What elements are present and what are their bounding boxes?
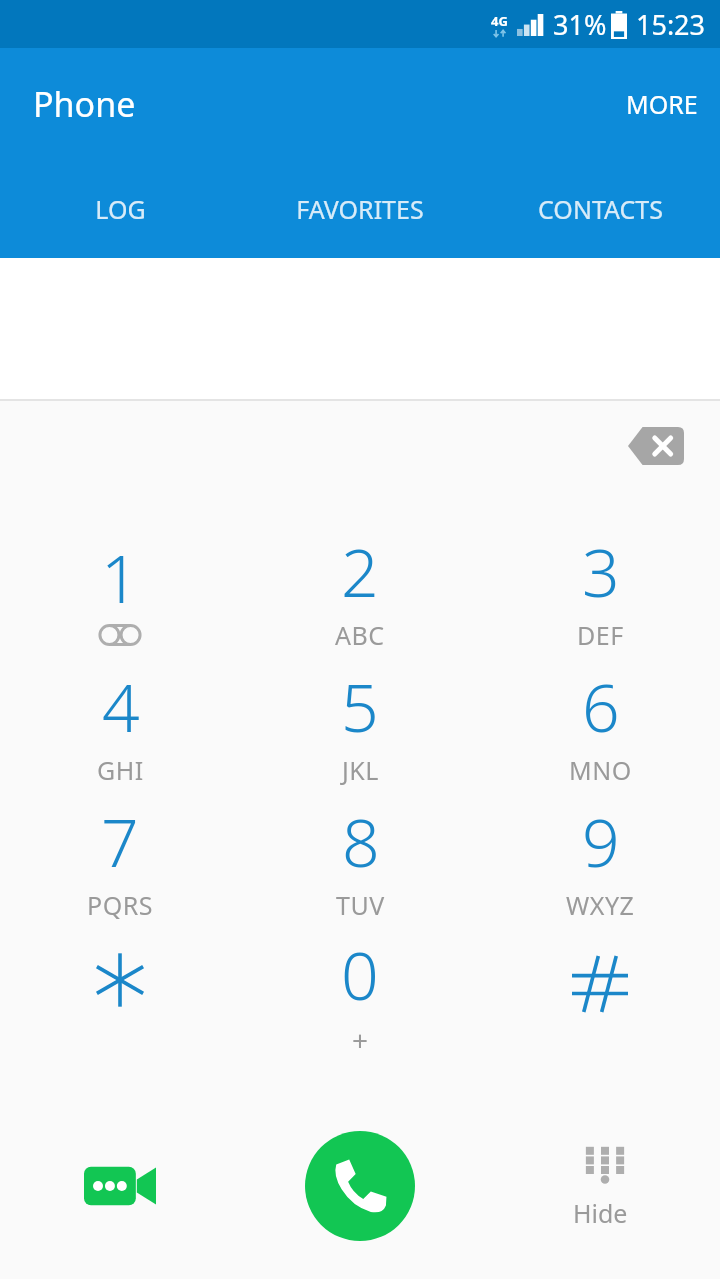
staticText: GHI [97,753,144,787]
button[interactable]: 3 [480,521,720,656]
button[interactable]: Star [0,926,240,1061]
button[interactable]: 7 [0,791,240,926]
staticText: 0 [341,929,379,1019]
button[interactable]: 9 [480,791,720,926]
staticText: WXYZ [566,888,635,922]
button[interactable]: 0 [240,926,480,1061]
staticText: 7 [101,796,139,886]
staticText: 3 [582,526,620,616]
button[interactable]: MORE [604,73,720,135]
staticText: CONTACTS [538,192,663,226]
staticText: 1 [101,532,139,622]
staticText: JKL [342,753,379,787]
button[interactable]: FAVORITES [240,160,480,258]
staticText: 4G [491,12,508,30]
staticText: 31% [553,6,607,43]
button[interactable]: 1 [0,521,240,656]
staticText: 8 [342,796,380,886]
staticText: MNO [569,753,632,787]
button[interactable]: 4 [0,656,240,791]
button[interactable]: Hide [480,1123,720,1249]
staticText: 2 [341,526,379,616]
button[interactable]: 5 [240,656,480,791]
staticText: 9 [582,796,620,886]
button[interactable]: Video call [0,1123,240,1249]
button[interactable]: 6 [480,656,720,791]
staticText: + [352,1021,369,1059]
button[interactable]: LOG [0,160,240,258]
staticText: 5 [341,661,379,751]
button[interactable]: 8 [240,791,480,926]
staticText: Hide [573,1196,628,1230]
button[interactable]: CONTACTS [480,160,720,258]
staticText: MORE [626,87,698,121]
staticText: DEF [577,618,624,652]
staticText: TUV [336,888,385,922]
staticText: FAVORITES [296,192,424,226]
staticText: 15:23 [636,6,706,43]
staticText: LOG [95,192,146,226]
button[interactable]: Pound [480,926,720,1061]
staticText: 6 [582,661,620,751]
staticText: Phone [33,81,136,127]
staticText: PQRS [87,888,153,922]
button[interactable]: 2 [240,521,480,656]
staticText: 4 [102,661,140,751]
staticText: ABC [335,618,385,652]
button[interactable]: Call [305,1131,415,1241]
button[interactable]: Backspace [618,417,694,475]
